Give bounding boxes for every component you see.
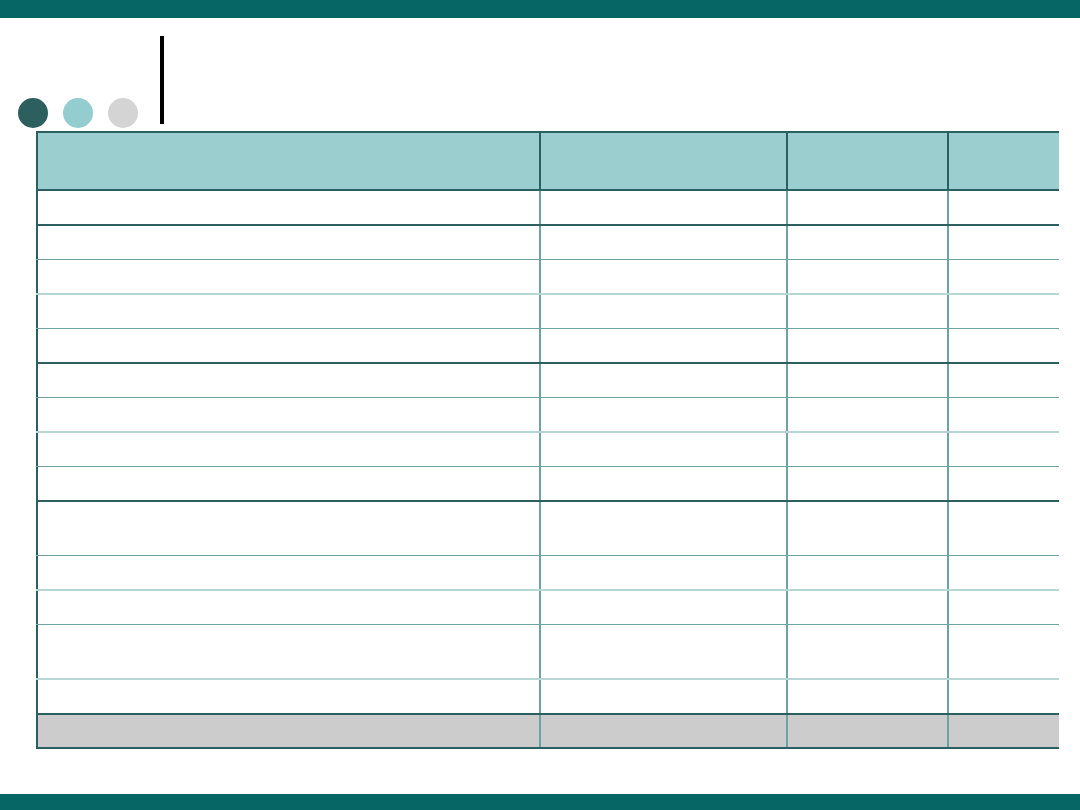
button[interactable]: Table row 13: [36, 625, 1059, 678]
button[interactable]: Table row 11: [36, 556, 1059, 589]
button[interactable]: Table row 1: [36, 191, 1059, 224]
button[interactable]: Table row 4: [36, 295, 1059, 328]
button[interactable]: Table row 3: [36, 260, 1059, 293]
button[interactable]: Table header: [36, 133, 1059, 189]
button[interactable]: Tertiary marker: [108, 98, 138, 128]
button[interactable]: Totals row: [36, 715, 1059, 747]
button[interactable]: Table row 8: [36, 433, 1059, 466]
button[interactable]: Table row 12: [36, 591, 1059, 624]
button[interactable]: Table row 9: [36, 467, 1059, 500]
button[interactable]: Table row 14: [36, 680, 1059, 713]
button[interactable]: Primary marker: [18, 98, 48, 128]
button[interactable]: Secondary marker: [63, 98, 93, 128]
button[interactable]: Table row 5: [36, 329, 1059, 362]
button[interactable]: Table row 7: [36, 398, 1059, 431]
button[interactable]: Table row 6: [36, 364, 1059, 397]
button[interactable]: Table row 10: [36, 502, 1059, 555]
button[interactable]: Table row 2: [36, 226, 1059, 259]
